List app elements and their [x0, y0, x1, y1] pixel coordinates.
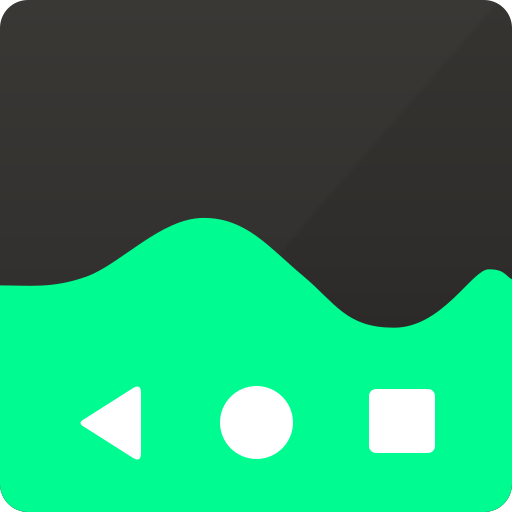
button[interactable]: Play: [78, 383, 141, 463]
button[interactable]: Record: [220, 386, 293, 459]
button[interactable]: Stop: [369, 389, 435, 453]
